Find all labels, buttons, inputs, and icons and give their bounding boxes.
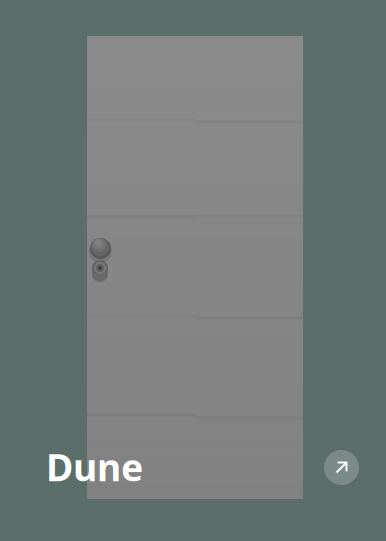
button[interactable]: Dune door	[87, 36, 303, 499]
button[interactable]: Open	[324, 450, 359, 485]
staticText: Dune	[46, 442, 143, 492]
